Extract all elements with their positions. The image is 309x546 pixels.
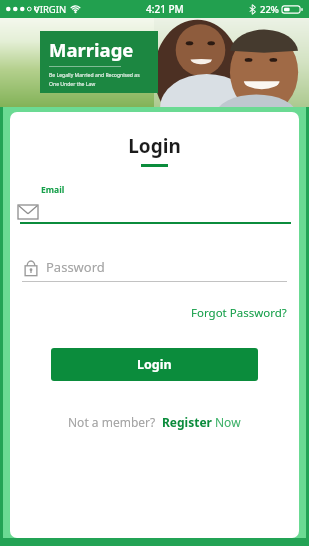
- staticText: Be Legally Married and Recognised as: [49, 72, 140, 79]
- button[interactable]: [18, 202, 291, 222]
- staticText: Login: [10, 133, 299, 159]
- staticText: Marriage: [49, 37, 134, 62]
- staticText: One Under the Law: [49, 81, 96, 88]
- staticText: 22%: [260, 3, 279, 16]
- staticText: Login: [137, 356, 172, 373]
- button[interactable]: Password: [24, 256, 287, 278]
- staticText: VIRGIN: [34, 3, 67, 16]
- button[interactable]: Forgot Password?: [191, 303, 299, 323]
- staticText: Password: [46, 258, 105, 276]
- button[interactable]: Login: [51, 348, 258, 381]
- staticText: Email: [41, 184, 65, 196]
- staticText: Now: [215, 414, 241, 430]
- button[interactable]: Register: [162, 412, 241, 432]
- staticText: Register: [162, 414, 212, 430]
- staticText: Not a member?: [68, 414, 156, 430]
- staticText: 4:21 PM: [146, 2, 184, 16]
